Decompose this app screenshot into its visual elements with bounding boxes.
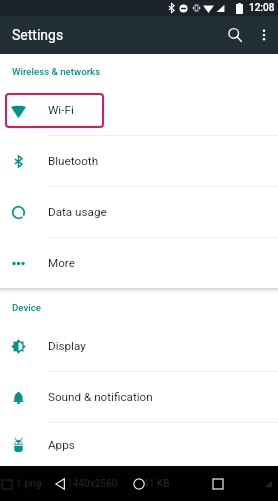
button[interactable]: Search [220, 20, 250, 50]
staticText: Apps [48, 438, 75, 452]
staticText: Wi-Fi [48, 103, 74, 117]
staticText: More [48, 256, 75, 270]
button[interactable]: Back [44, 466, 76, 501]
staticText: Device [12, 302, 41, 313]
staticText: 1.png [16, 478, 42, 490]
staticText: Bluetooth [48, 154, 99, 168]
button[interactable]: Home [123, 466, 155, 501]
button[interactable]: Sound & notification [0, 372, 278, 422]
button[interactable]: Apps [0, 423, 278, 466]
staticText: Display [48, 339, 86, 353]
button[interactable]: More [0, 238, 278, 288]
button[interactable]: Recent apps [202, 466, 234, 501]
staticText: 1440x2560 [67, 478, 118, 490]
button[interactable]: More options [250, 16, 278, 54]
button[interactable]: Data usage [0, 187, 278, 237]
staticText: 41 KB [143, 478, 170, 490]
staticText: Wireless & networks [12, 66, 101, 77]
button[interactable]: Bluetooth [0, 136, 278, 186]
button[interactable]: Display [0, 321, 278, 371]
staticText: Sound & notification [48, 390, 153, 404]
button[interactable]: Wi-Fi [0, 85, 278, 135]
staticText: 12:08 [249, 2, 275, 14]
staticText: Settings [12, 27, 64, 43]
staticText: Data usage [48, 205, 107, 219]
